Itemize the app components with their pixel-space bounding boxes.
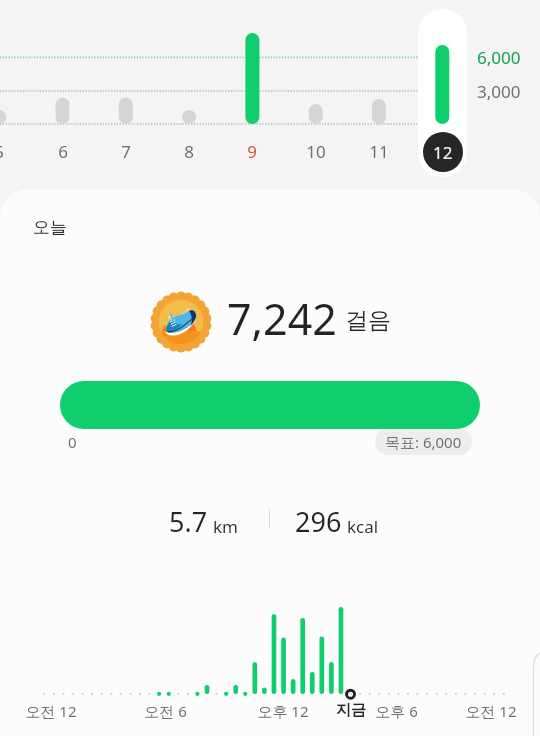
button[interactable]: 5: [0, 0, 540, 186]
staticText: 6: [58, 140, 68, 163]
staticText: 9: [247, 140, 257, 163]
staticText: 5: [0, 140, 4, 163]
staticText: 11: [369, 140, 389, 163]
staticText: 0: [68, 432, 77, 452]
button[interactable]: [60, 381, 480, 429]
staticText: 12: [433, 141, 453, 164]
staticText: 오전 6: [144, 701, 187, 721]
staticText: 296: [295, 503, 342, 540]
staticText: 7: [121, 140, 131, 163]
button[interactable]: 오늘: [0, 189, 540, 736]
button[interactable]: 오전 12: [0, 590, 540, 720]
staticText: 걸음: [345, 306, 391, 335]
staticText: 오전 12: [465, 701, 517, 721]
staticText: 5.7: [169, 503, 208, 540]
staticText: km: [213, 515, 238, 538]
staticText: 오전 12: [25, 701, 77, 721]
staticText: 10: [306, 140, 326, 163]
staticText: 지금: [336, 701, 366, 720]
staticText: 오후 6: [375, 701, 418, 721]
staticText: 목표: 6,000: [385, 432, 462, 452]
button[interactable]: 296: [295, 503, 379, 540]
staticText: 6,000: [477, 46, 521, 69]
staticText: 3,000: [477, 80, 521, 103]
staticText: 8: [184, 140, 194, 163]
staticText: kcal: [347, 515, 379, 538]
staticText: 7,242: [227, 289, 337, 348]
staticText: 오후 12: [257, 701, 309, 721]
staticText: 오늘: [33, 217, 67, 238]
button[interactable]: 12: [423, 132, 463, 172]
button[interactable]: 5.7: [169, 503, 238, 540]
